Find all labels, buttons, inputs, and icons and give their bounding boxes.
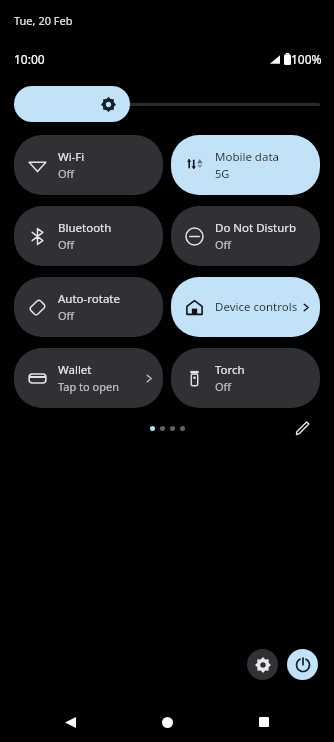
- staticText: Mobile data: [215, 149, 279, 165]
- staticText: Torch: [215, 362, 245, 378]
- staticText: Bluetooth: [58, 220, 112, 236]
- button[interactable]: Auto-rotate: [14, 277, 163, 337]
- button[interactable]: Mobile data: [171, 135, 320, 195]
- staticText: Off: [215, 237, 232, 252]
- button[interactable]: Bluetooth: [14, 206, 163, 266]
- staticText: Device controls: [215, 299, 298, 315]
- staticText: Do Not Disturb: [215, 220, 297, 236]
- button[interactable]: Settings: [247, 649, 278, 680]
- staticText: Off: [215, 379, 232, 394]
- staticText: 100%: [291, 51, 322, 67]
- button[interactable]: Device controls: [171, 277, 320, 337]
- button[interactable]: Do Not Disturb: [171, 206, 320, 266]
- staticText: Tap to open: [58, 379, 119, 394]
- staticText: Off: [58, 308, 75, 323]
- staticText: Wi-Fi: [58, 149, 85, 165]
- staticText: Tue, 20 Feb: [14, 13, 73, 28]
- button[interactable]: Edit tiles: [290, 416, 314, 440]
- button[interactable]: Wi-Fi: [14, 135, 163, 195]
- button[interactable]: Back: [56, 708, 84, 736]
- button[interactable]: Wallet: [14, 348, 163, 408]
- button[interactable]: Home: [153, 708, 181, 736]
- staticText: 10:00: [14, 51, 45, 67]
- staticText: Off: [58, 237, 75, 252]
- staticText: Off: [58, 166, 75, 181]
- button[interactable]: Recents: [250, 708, 278, 736]
- button[interactable]: Power: [287, 649, 318, 680]
- staticText: Auto-rotate: [58, 291, 120, 307]
- staticText: 5G: [215, 166, 230, 181]
- staticText: Wallet: [58, 362, 92, 378]
- button[interactable]: Torch: [171, 348, 320, 408]
- button[interactable]: Brightness: [14, 86, 130, 122]
